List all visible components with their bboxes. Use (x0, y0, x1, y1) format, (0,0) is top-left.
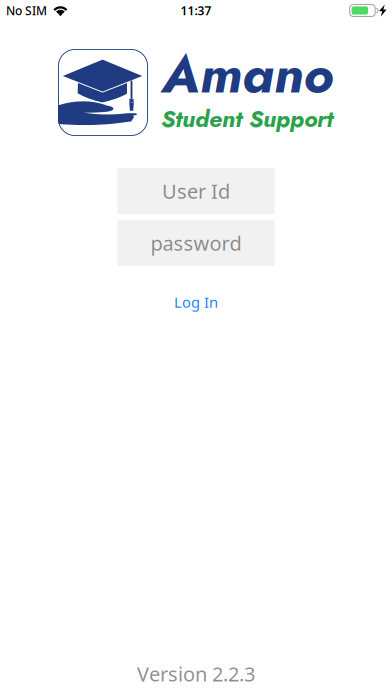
staticText: Log In (174, 292, 218, 312)
staticText: No SIM (6, 2, 47, 18)
staticText: password (150, 230, 241, 256)
button[interactable]: Log In (136, 290, 256, 314)
button[interactable]: User Id (117, 168, 274, 214)
button[interactable]: password (117, 220, 274, 266)
staticText: Amano (162, 36, 333, 112)
staticText: 11:37 (180, 2, 211, 18)
staticText: Student Support (161, 102, 333, 136)
staticText: User Id (162, 178, 230, 204)
staticText: Version 2.2.3 (137, 660, 255, 687)
